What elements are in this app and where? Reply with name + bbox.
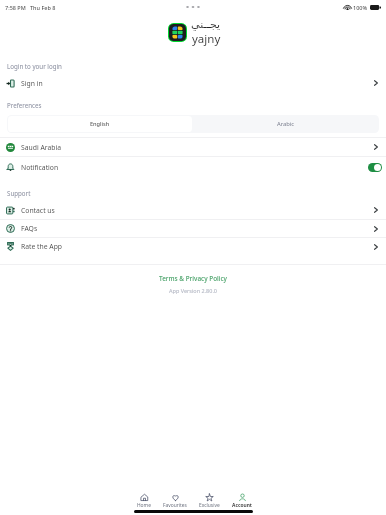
staticText: App Version 2.80.0 xyxy=(169,287,218,294)
staticText: Support xyxy=(7,189,31,197)
staticText: Saudi Arabia xyxy=(21,143,62,152)
button[interactable]: Sign in xyxy=(0,74,386,92)
button[interactable]: Home xyxy=(137,493,151,509)
button[interactable]: Terms & Privacy Policy xyxy=(155,273,231,284)
staticText: Arabic xyxy=(277,120,295,128)
staticText: Sign in xyxy=(21,79,43,88)
staticText: Thu Feb 8 xyxy=(30,4,56,11)
staticText: يجــني xyxy=(191,18,221,31)
staticText: Contact us xyxy=(21,206,55,215)
staticText: Terms & Privacy Policy xyxy=(159,274,227,283)
button[interactable]: Notification xyxy=(0,157,386,177)
button[interactable]: Exclusive xyxy=(199,493,220,509)
button[interactable]: English xyxy=(8,116,192,132)
button[interactable]: Saudi Arabia xyxy=(0,138,386,156)
button[interactable]: FAQs xyxy=(0,220,386,237)
staticText: Home xyxy=(137,502,151,509)
staticText: English xyxy=(90,120,110,128)
staticText: Preferences xyxy=(7,101,42,109)
button[interactable]: Account xyxy=(232,493,252,509)
staticText: yajny xyxy=(192,31,221,47)
staticText: Notification xyxy=(21,163,59,172)
staticText: Exclusive xyxy=(199,502,220,509)
button[interactable]: Notification toggle xyxy=(368,163,382,172)
staticText: Rate the App xyxy=(21,242,63,251)
staticText: Favourites xyxy=(163,502,187,509)
button[interactable]: Favourites xyxy=(163,493,187,509)
button[interactable]: Rate the App xyxy=(0,238,386,255)
staticText: Account xyxy=(232,502,252,509)
staticText: 7:58 PM xyxy=(5,4,26,11)
button[interactable]: Contact us xyxy=(0,201,386,219)
staticText: Login to your login xyxy=(7,62,62,70)
button[interactable]: Arabic xyxy=(193,115,379,133)
staticText: FAQs xyxy=(21,224,38,233)
staticText: 100% xyxy=(353,4,368,11)
